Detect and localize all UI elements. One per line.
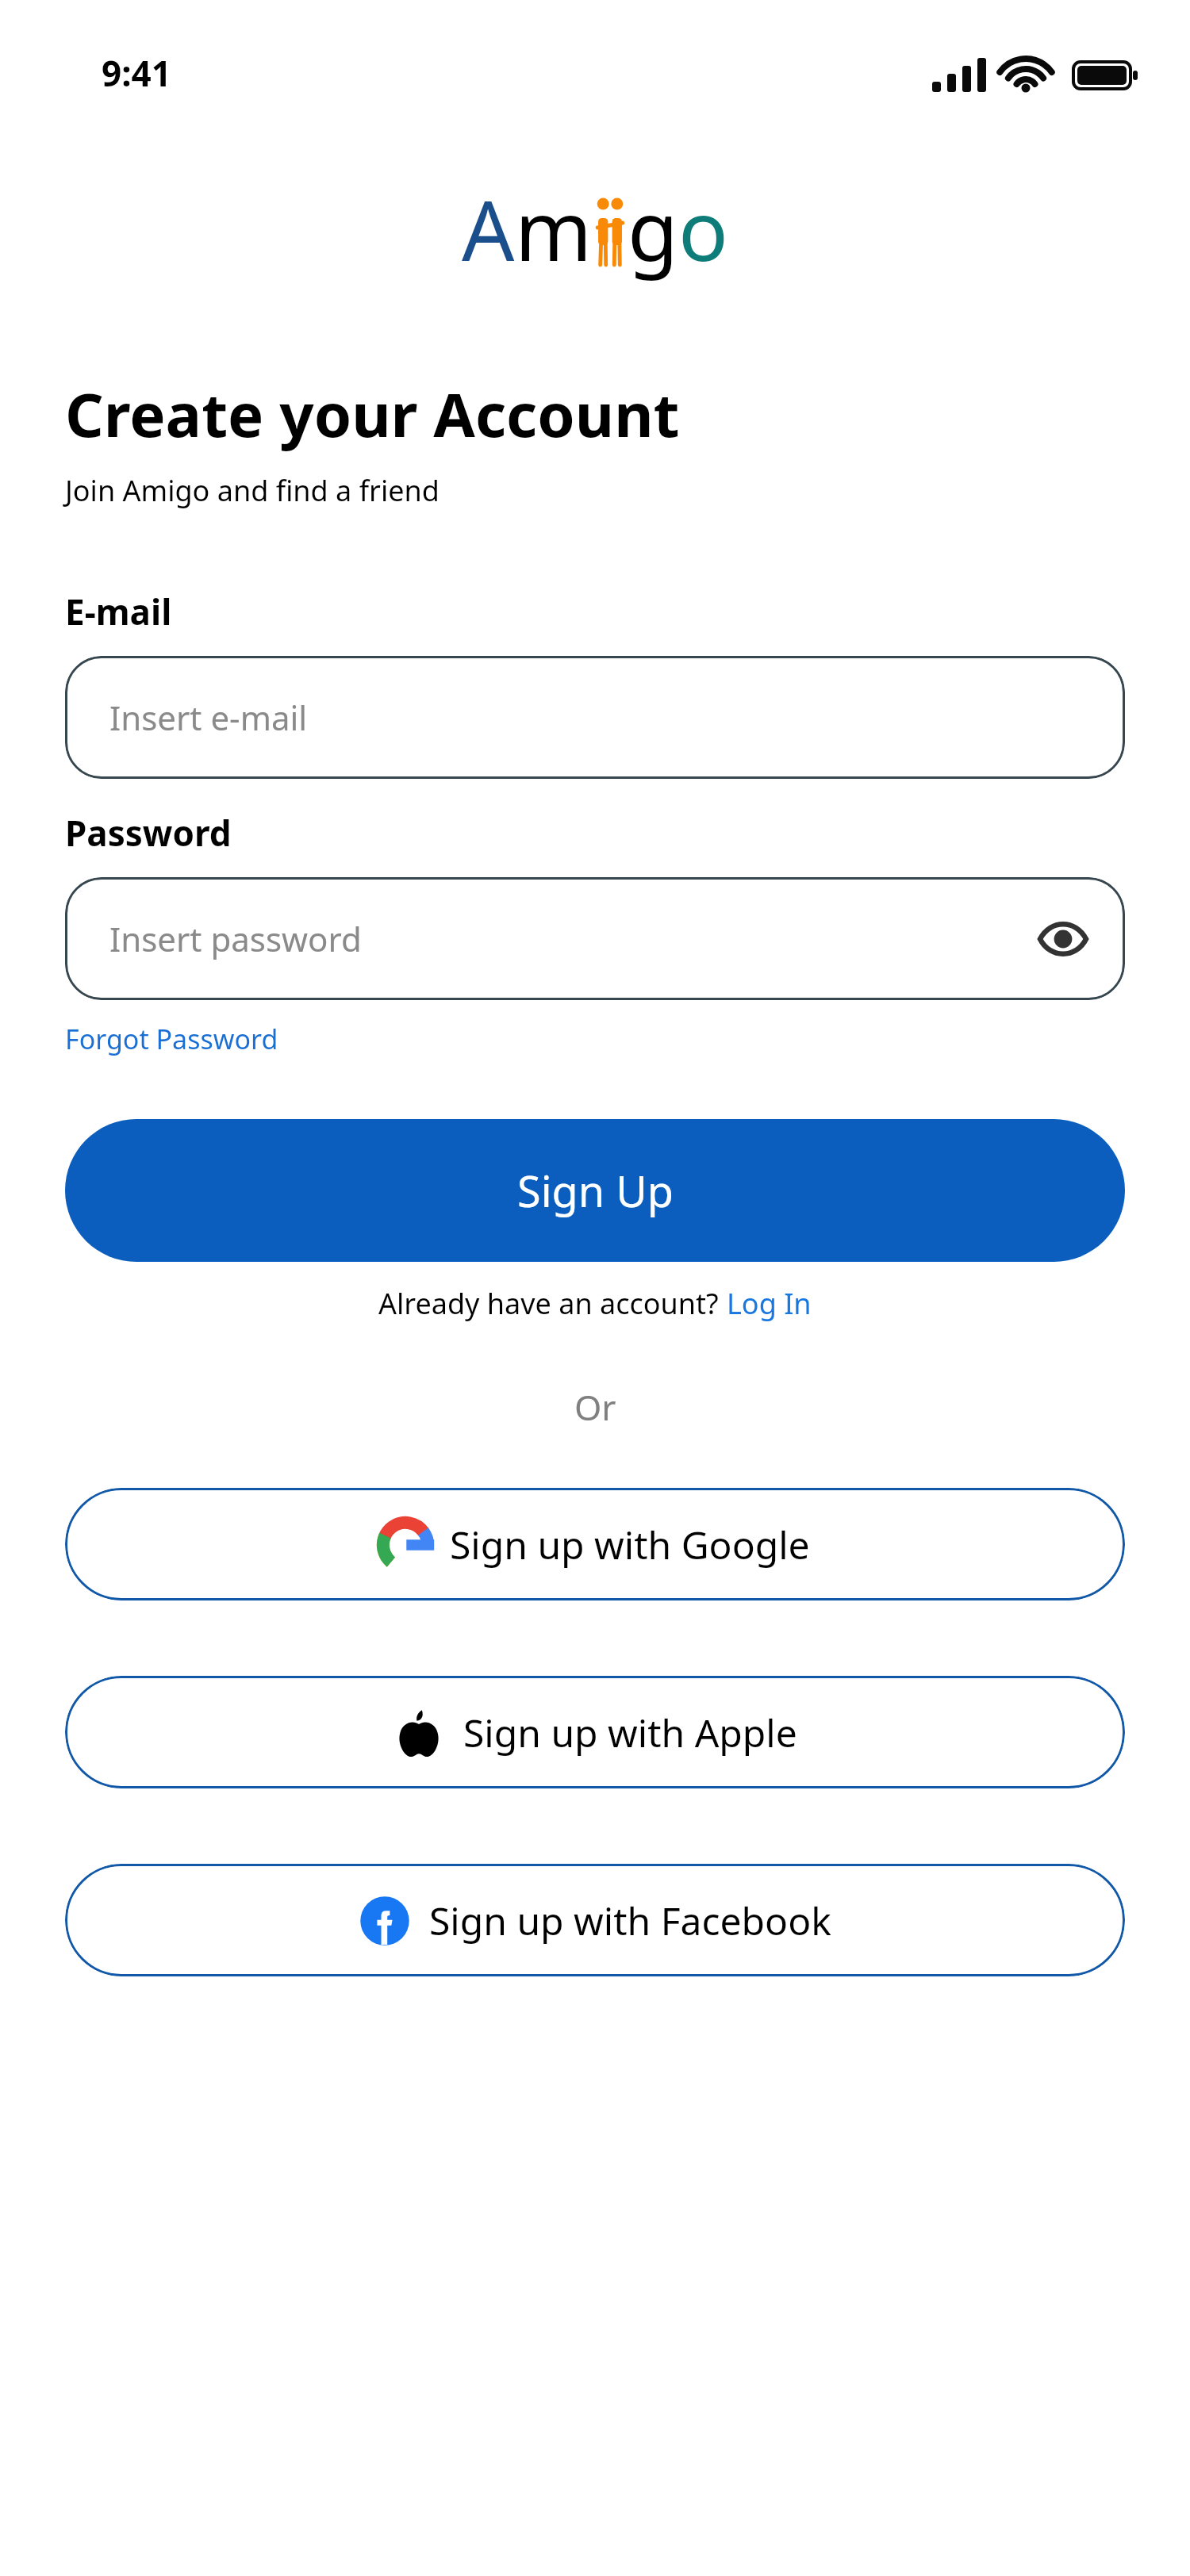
staticText: Sign up with Apple bbox=[463, 1707, 797, 1758]
staticText: Password bbox=[65, 809, 232, 857]
button[interactable]: Sign up with Apple bbox=[65, 1676, 1125, 1788]
staticText: Forgot Password bbox=[65, 1021, 278, 1057]
button[interactable]: Insert password bbox=[65, 877, 1125, 1000]
button[interactable]: Sign up with Facebook bbox=[65, 1864, 1125, 1976]
button[interactable]: Show password bbox=[1035, 910, 1092, 968]
staticText: Join Amigo and find a friend bbox=[65, 471, 440, 510]
staticText: Or bbox=[574, 1383, 616, 1431]
button[interactable]: Log In bbox=[727, 1284, 812, 1323]
staticText: Already have an account? bbox=[378, 1284, 727, 1323]
staticText: o bbox=[678, 173, 728, 286]
staticText: Sign up with Google bbox=[450, 1519, 810, 1570]
staticText: g bbox=[628, 173, 678, 286]
staticText: Sign up with Facebook bbox=[429, 1895, 831, 1946]
staticText: Insert e-mail bbox=[109, 695, 308, 740]
button[interactable]: Insert e-mail bbox=[65, 656, 1125, 779]
button[interactable]: Forgot Password bbox=[65, 1021, 278, 1057]
staticText: Insert password bbox=[109, 916, 362, 961]
staticText: E-mail bbox=[65, 588, 172, 635]
staticText: Log In bbox=[727, 1284, 812, 1323]
staticText: A bbox=[462, 173, 515, 286]
button[interactable]: Sign Up bbox=[65, 1119, 1125, 1262]
staticText: Sign Up bbox=[517, 1161, 674, 1220]
button[interactable]: Sign up with Google bbox=[65, 1488, 1125, 1600]
staticText: 9:41 bbox=[102, 49, 171, 97]
staticText: Create your Account bbox=[65, 373, 680, 455]
staticText: m bbox=[515, 173, 593, 286]
